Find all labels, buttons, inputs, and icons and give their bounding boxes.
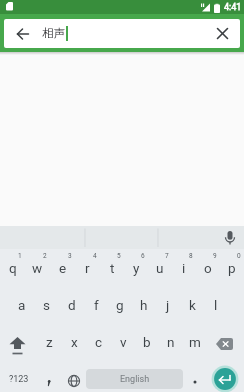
button[interactable]: ?123 (0, 363, 37, 392)
button[interactable]: g (108, 286, 132, 323)
button[interactable]: k (180, 286, 204, 323)
button[interactable]: a (9, 286, 34, 323)
button[interactable] (183, 363, 207, 392)
staticText: 9 (213, 252, 217, 260)
staticText: r (85, 260, 90, 276)
button[interactable]: h (132, 286, 156, 323)
staticText: g (116, 297, 124, 313)
button[interactable]: b (135, 323, 159, 360)
staticText: 6 (141, 252, 145, 260)
staticText: w (32, 260, 43, 276)
button[interactable]: u (148, 249, 172, 286)
staticText: a (18, 297, 26, 313)
button[interactable]: x (62, 323, 87, 360)
button[interactable]: e (50, 249, 75, 286)
staticText: m (189, 334, 201, 350)
staticText: q (9, 260, 17, 276)
staticText: x (71, 334, 78, 350)
staticText: 7 (165, 252, 169, 260)
staticText: p (228, 260, 236, 276)
button[interactable]: q (0, 249, 25, 286)
button[interactable]: c (87, 323, 111, 360)
staticText: 4:41 (224, 2, 242, 13)
button[interactable] (0, 323, 37, 360)
button[interactable] (204, 19, 240, 48)
button[interactable]: p (220, 249, 244, 286)
staticText: k (189, 297, 196, 313)
button[interactable]: m (183, 323, 207, 360)
button[interactable] (207, 363, 244, 392)
staticText: 8 (189, 252, 193, 260)
button[interactable]: r (75, 249, 100, 286)
staticText: d (68, 297, 76, 313)
button[interactable]: o (196, 249, 220, 286)
staticText: 0 (237, 252, 241, 260)
staticText: 相声 (42, 26, 65, 40)
button[interactable]: English (86, 363, 183, 392)
button[interactable]: f (84, 286, 108, 323)
staticText: i (182, 260, 186, 276)
staticText: English (120, 374, 150, 385)
staticText: b (143, 334, 151, 350)
button[interactable]: d (59, 286, 84, 323)
button[interactable] (216, 226, 244, 249)
button[interactable]: l (204, 286, 228, 323)
staticText: 1 (18, 252, 22, 260)
button[interactable]: n (159, 323, 183, 360)
staticText: t (110, 260, 115, 276)
staticText: o (204, 260, 212, 276)
staticText: h (140, 297, 148, 313)
button[interactable] (37, 363, 61, 392)
staticText: c (95, 334, 103, 350)
staticText: z (46, 334, 53, 350)
button[interactable]: w (25, 249, 50, 286)
staticText: y (133, 260, 140, 276)
button[interactable]: v (111, 323, 135, 360)
staticText: ?123 (9, 374, 29, 385)
button[interactable]: z (37, 323, 62, 360)
button[interactable] (207, 323, 244, 360)
staticText: 3 (68, 252, 72, 260)
staticText: n (167, 334, 175, 350)
button[interactable] (61, 363, 86, 392)
staticText: l (214, 297, 218, 313)
staticText: j (166, 297, 170, 313)
button[interactable]: i (172, 249, 196, 286)
staticText: e (59, 260, 67, 276)
staticText: 4 (93, 252, 97, 260)
staticText: u (156, 260, 164, 276)
button[interactable]: j (156, 286, 180, 323)
button[interactable] (4, 19, 42, 48)
staticText: v (120, 334, 127, 350)
staticText: s (43, 297, 50, 313)
button[interactable]: s (34, 286, 59, 323)
staticText: 5 (117, 252, 121, 260)
staticText: f (94, 297, 99, 313)
button[interactable]: t (100, 249, 124, 286)
staticText: 2 (43, 252, 47, 260)
button[interactable]: y (124, 249, 148, 286)
